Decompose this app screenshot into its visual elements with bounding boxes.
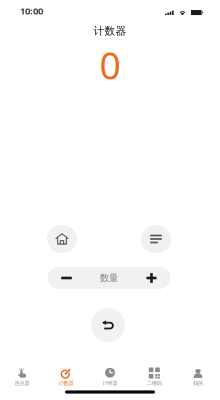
staticText: 我的 xyxy=(193,380,203,386)
staticText: 数量 xyxy=(100,272,118,284)
staticText: 0 xyxy=(99,40,120,90)
staticText: 二维码 xyxy=(146,380,161,386)
staticText: 连点器 xyxy=(14,380,29,386)
button[interactable]: 重置 xyxy=(91,308,125,342)
staticText: 10:00 xyxy=(20,5,43,17)
button[interactable]: 二维码 xyxy=(132,362,176,392)
staticText: 计数器 xyxy=(58,380,73,386)
button[interactable]: 增加 xyxy=(132,267,170,289)
button[interactable]: 列表 xyxy=(141,225,171,253)
staticText: 计时器 xyxy=(102,380,117,386)
button[interactable]: 计时器 xyxy=(88,362,132,392)
button[interactable]: 主页 xyxy=(47,225,77,253)
button[interactable]: 减少 xyxy=(47,267,85,289)
staticText: 计数器 xyxy=(93,24,126,37)
button[interactable]: 我的 xyxy=(176,362,220,392)
button[interactable]: 连点器 xyxy=(0,362,44,392)
button[interactable]: 计数器 xyxy=(44,362,88,392)
